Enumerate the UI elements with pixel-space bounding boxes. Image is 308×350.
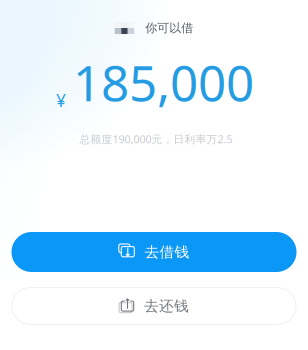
staticText: 你可以借 [145, 21, 193, 35]
button[interactable]: 去还钱 [12, 287, 296, 324]
button[interactable]: 去借钱 [11, 232, 296, 272]
staticText: 去还钱 [144, 297, 189, 315]
staticText: 185,000 [73, 49, 254, 115]
staticText: 总额度190,000元，日利率万2.5 [79, 132, 232, 146]
staticText: ¥ [56, 89, 66, 112]
staticText: 去借钱 [144, 243, 189, 261]
